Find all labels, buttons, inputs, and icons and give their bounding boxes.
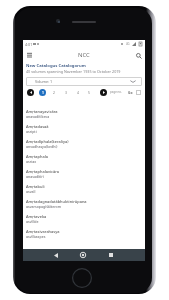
staticText: 4G bbox=[126, 42, 130, 46]
staticText: Go bbox=[128, 90, 133, 94]
button[interactable]: Amṛtaphalavicāra bbox=[26, 168, 142, 183]
staticText: page no. bbox=[110, 90, 122, 94]
button[interactable]: Previous page bbox=[27, 89, 34, 96]
button[interactable]: Open navigation menu bbox=[23, 49, 35, 61]
button[interactable]: 4 bbox=[74, 89, 81, 96]
button[interactable]: Amṛtadīphala(keraliya) bbox=[26, 138, 142, 153]
staticText: Amṛtanayavicāra bbox=[26, 109, 58, 114]
staticText: NCC bbox=[78, 51, 90, 59]
button[interactable]: Volume: 1 bbox=[26, 77, 142, 86]
staticText: anvadhasya(kedhi) bbox=[26, 144, 58, 149]
staticText: asvalī bbox=[26, 189, 36, 194]
staticText: 2 bbox=[53, 90, 55, 95]
staticText: Amṛtaphalavicāra bbox=[26, 169, 59, 174]
staticText: asriax bbox=[26, 159, 37, 164]
button[interactable]: 5 bbox=[85, 89, 92, 96]
staticText: Amṛtabuli bbox=[26, 184, 45, 189]
button[interactable]: Amṛtaphala bbox=[26, 153, 142, 168]
staticText: Volume: 1 bbox=[35, 79, 53, 84]
staticText: Amṛtadagnadatābhuktinirūpana bbox=[26, 199, 87, 204]
staticText: Amṛtasivarahasya bbox=[26, 229, 60, 234]
staticText: asripti bbox=[26, 129, 37, 134]
button[interactable]: Recent apps bbox=[103, 249, 119, 261]
staticText: 1 bbox=[42, 90, 44, 95]
staticText: asvarsopagīśāīterom bbox=[26, 204, 62, 209]
staticText: asvlībīe bbox=[26, 219, 39, 224]
staticText: 3 bbox=[65, 90, 67, 95]
staticText: Amṛtaveka bbox=[26, 214, 47, 219]
staticText: 5 bbox=[88, 90, 90, 95]
button[interactable]: Amṛtabuli bbox=[26, 183, 142, 198]
button[interactable]: Amṛtadagnadatābhuktinirūpana bbox=[26, 198, 142, 213]
button[interactable]: 2 bbox=[50, 89, 57, 96]
staticText: anavadītīkeva bbox=[26, 114, 50, 119]
staticText: Amṛtadīphala(keraliya) bbox=[26, 139, 69, 144]
staticText: New Catalogus Catalogorum bbox=[26, 63, 86, 69]
staticText: 4 bbox=[77, 90, 79, 95]
button[interactable]: Go bbox=[128, 90, 133, 94]
button[interactable]: Amṛtasivarahasya bbox=[26, 228, 142, 243]
staticText: asvlībaxpes bbox=[26, 234, 46, 239]
staticText: 4:01 bbox=[25, 42, 33, 47]
button[interactable]: Amṛtadasaā bbox=[26, 123, 142, 138]
staticText: Amṛtaphala bbox=[26, 154, 48, 159]
staticText: Amṛtadasaā bbox=[26, 124, 49, 129]
button[interactable]: Next page bbox=[100, 89, 107, 96]
button[interactable]: Amṛtaveka bbox=[26, 213, 142, 228]
button[interactable]: 3 bbox=[62, 89, 69, 96]
button[interactable]: 1 bbox=[39, 89, 46, 96]
button[interactable]: Home bbox=[75, 249, 91, 261]
button[interactable]: Back bbox=[48, 249, 64, 261]
staticText: 40 volumes spanning November 1935 to Oct… bbox=[26, 69, 121, 74]
staticText: anasadītīrī bbox=[26, 174, 44, 179]
button[interactable]: Search bbox=[133, 50, 145, 62]
button[interactable]: Amṛtanayavicāra bbox=[26, 108, 142, 123]
